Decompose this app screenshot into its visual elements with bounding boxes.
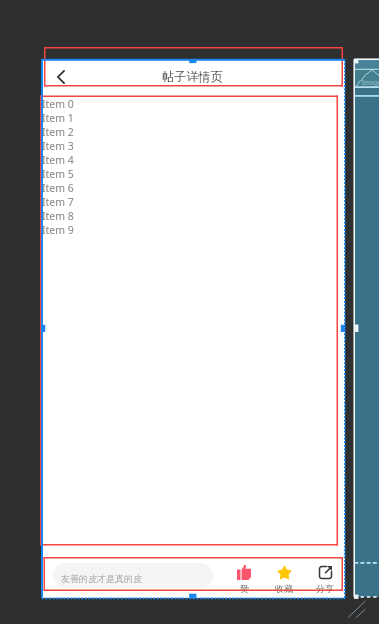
staticText: ImageView bbox=[362, 78, 379, 86]
staticText: Item 1 bbox=[42, 111, 74, 125]
staticText: Item 9 bbox=[42, 223, 74, 237]
staticText: 赞 bbox=[240, 583, 249, 594]
button[interactable]: Back bbox=[52, 68, 70, 86]
button[interactable]: Item 8 bbox=[42, 209, 345, 223]
staticText: Item 0 bbox=[42, 97, 74, 111]
button[interactable]: 赞 bbox=[228, 565, 260, 594]
staticText: Item 2 bbox=[42, 125, 74, 139]
button[interactable]: 帖子详情页 bbox=[42, 60, 345, 86]
button[interactable]: Item 3 bbox=[42, 139, 345, 153]
staticText: Item 4 bbox=[42, 153, 74, 167]
button[interactable]: Item 6 bbox=[42, 181, 345, 195]
staticText: Item 6 bbox=[42, 181, 74, 195]
button[interactable]: Item 7 bbox=[42, 195, 345, 209]
staticText: 友善的皮才是真的皮 bbox=[61, 573, 142, 584]
staticText: 帖子详情页 bbox=[162, 69, 223, 84]
button[interactable]: Item 5 bbox=[42, 167, 345, 181]
button[interactable]: Item 4 bbox=[42, 153, 345, 167]
button[interactable]: Item 1 bbox=[42, 111, 345, 125]
staticText: Item 5 bbox=[42, 167, 74, 181]
button[interactable]: Item 2 bbox=[42, 125, 345, 139]
button[interactable]: 友善的皮才是真的皮 bbox=[53, 563, 213, 588]
staticText: Item 7 bbox=[42, 195, 74, 209]
button[interactable]: Item 9 bbox=[42, 223, 345, 237]
staticText: Item 8 bbox=[42, 209, 74, 223]
button[interactable]: 分享 bbox=[309, 565, 341, 594]
button[interactable]: 收藏 bbox=[268, 565, 300, 594]
staticText: 分享 bbox=[316, 583, 334, 594]
button[interactable]: Item 0 bbox=[42, 97, 345, 111]
staticText: 收藏 bbox=[275, 583, 293, 594]
staticText: Item 3 bbox=[42, 139, 74, 153]
